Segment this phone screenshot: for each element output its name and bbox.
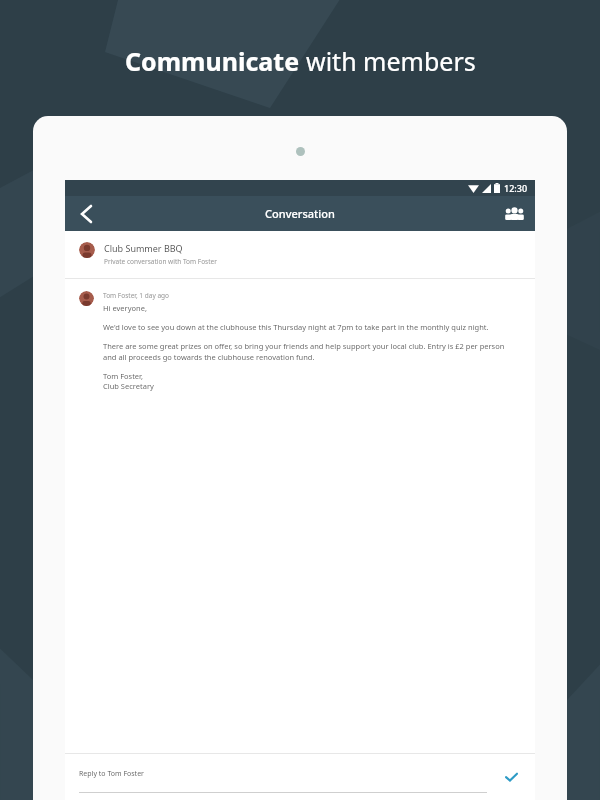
staticText: Communicate xyxy=(125,44,306,78)
staticText: Club Summer BBQ xyxy=(104,242,183,254)
staticText: Hi everyone, xyxy=(103,303,147,313)
staticText: Reply to Tom Foster xyxy=(79,769,144,779)
staticText: Tom Foster, 1 day ago xyxy=(103,291,170,300)
staticText: Tom Foster, xyxy=(103,371,144,381)
button[interactable]: Club Summer BBQ xyxy=(65,231,535,278)
button[interactable]: Reply to Tom Foster xyxy=(65,754,535,800)
staticText: 12:30 xyxy=(504,182,528,194)
staticText: with members xyxy=(306,44,476,78)
button[interactable]: Back xyxy=(65,196,107,231)
staticText: We'd love to see you down at the clubhou… xyxy=(103,322,489,332)
staticText: Club Secretary xyxy=(103,381,154,391)
button[interactable]: Members xyxy=(493,196,535,231)
staticText: Private conversation with Tom Foster xyxy=(104,257,217,266)
button[interactable]: Send reply xyxy=(501,767,521,787)
staticText: Conversation xyxy=(265,206,335,221)
staticText: There are some great prizes on offer, so… xyxy=(103,341,513,362)
